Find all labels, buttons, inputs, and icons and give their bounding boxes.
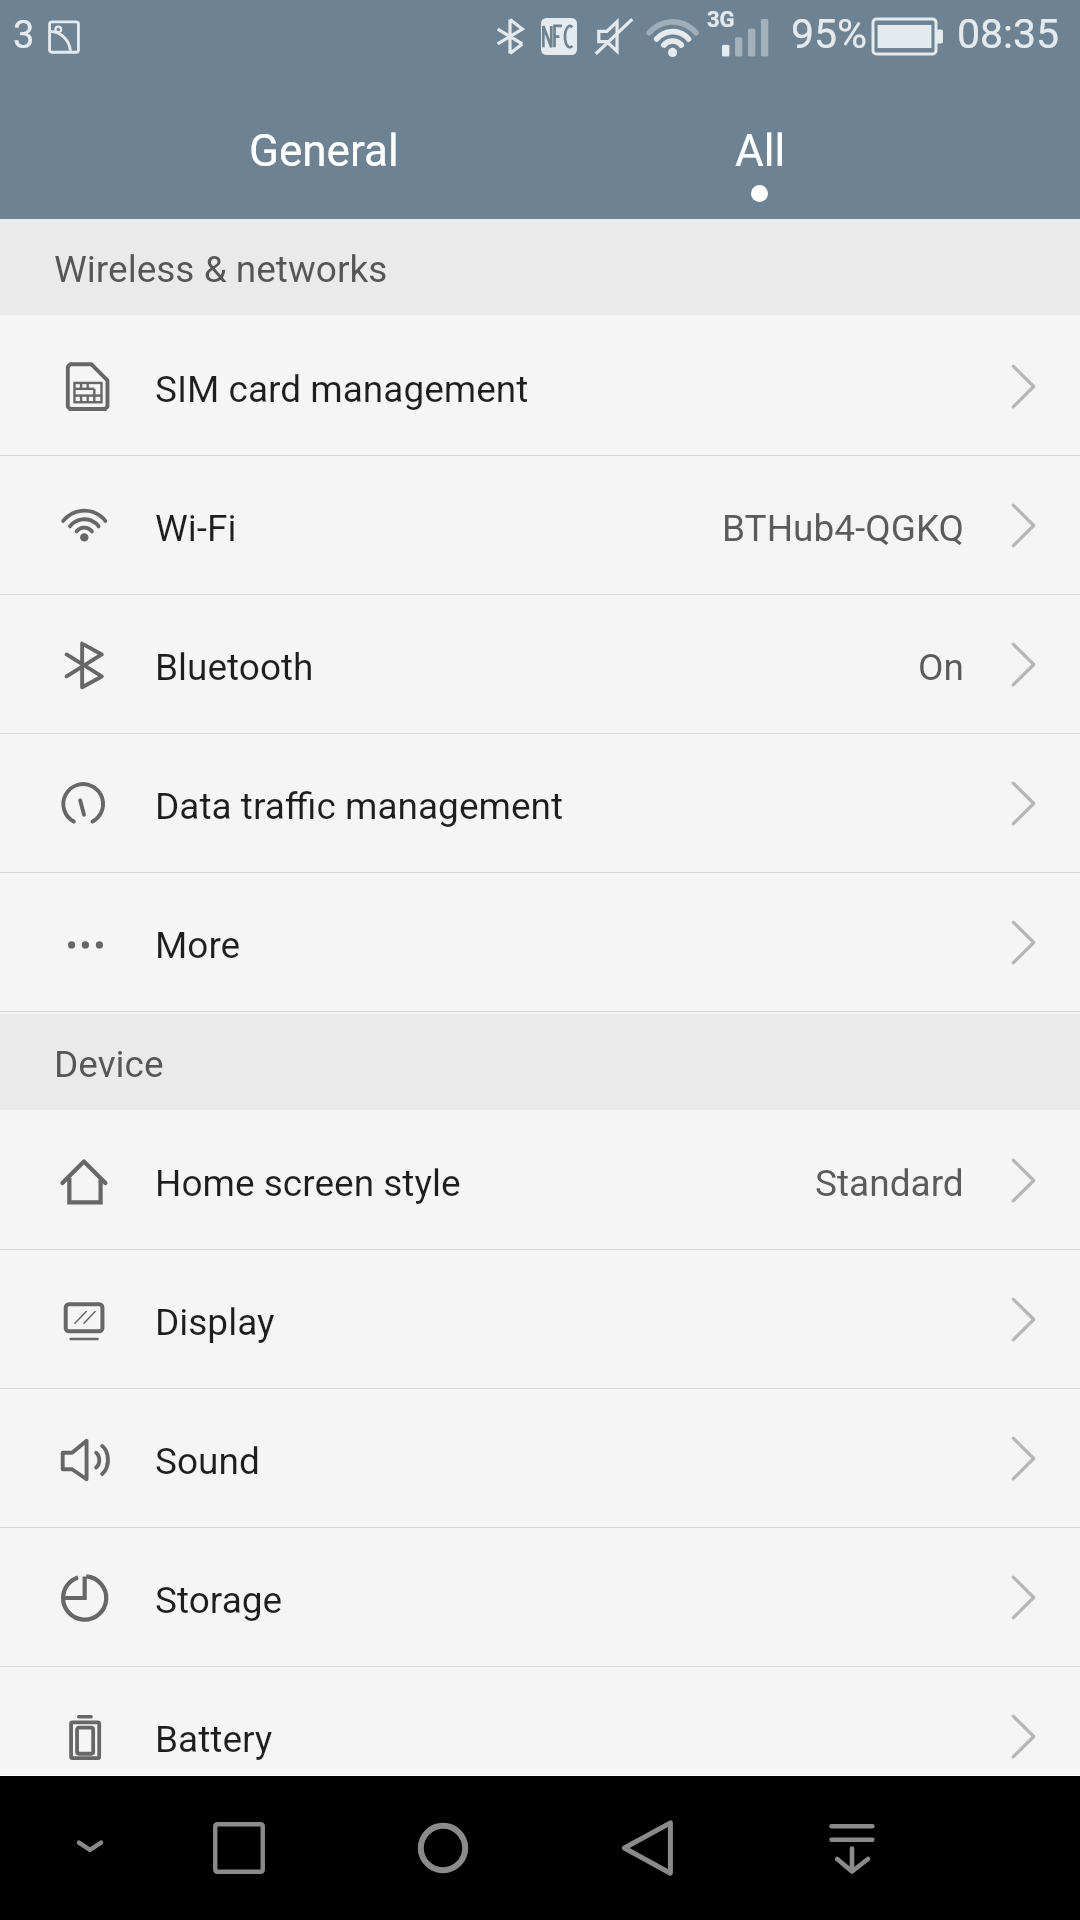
button[interactable]: Home: [373, 1776, 513, 1920]
button[interactable]: Recent apps: [169, 1776, 309, 1920]
button[interactable]: Home screen style: [0, 1111, 1080, 1250]
staticText: Wireless & networks: [54, 248, 388, 291]
staticText: 95%: [791, 10, 868, 58]
button[interactable]: Notification shade: [782, 1776, 922, 1920]
button[interactable]: Collapse: [20, 1776, 160, 1920]
staticText: Data traffic management: [155, 785, 564, 828]
button[interactable]: Wi-Fi: [0, 456, 1080, 595]
staticText: SIM card management: [155, 368, 529, 411]
staticText: 3G: [707, 7, 735, 33]
staticText: Display: [155, 1301, 275, 1344]
button[interactable]: Display: [0, 1250, 1080, 1389]
button[interactable]: More: [0, 873, 1080, 1012]
button[interactable]: General: [0, 72, 540, 219]
staticText: All: [735, 125, 786, 177]
button[interactable]: Data traffic management: [0, 734, 1080, 873]
staticText: Battery: [155, 1718, 273, 1761]
button[interactable]: Storage: [0, 1528, 1080, 1667]
staticText: 08:35: [957, 10, 1060, 58]
staticText: Standard: [815, 1162, 964, 1205]
staticText: Storage: [155, 1579, 283, 1622]
staticText: Sound: [155, 1440, 260, 1483]
staticText: More: [155, 924, 241, 967]
button[interactable]: Back: [578, 1776, 718, 1920]
staticText: On: [918, 646, 964, 689]
staticText: General: [249, 125, 399, 177]
button[interactable]: SIM card management: [0, 317, 1080, 456]
staticText: Bluetooth: [155, 646, 314, 689]
staticText: BTHub4-QGKQ: [722, 507, 964, 550]
button[interactable]: Sound: [0, 1389, 1080, 1528]
staticText: Wi-Fi: [155, 507, 237, 550]
button[interactable]: All: [540, 72, 1080, 219]
staticText: 3: [13, 13, 35, 58]
staticText: Home screen style: [155, 1162, 461, 1205]
button[interactable]: Bluetooth: [0, 595, 1080, 734]
button[interactable]: Battery: [0, 1667, 1080, 1776]
staticText: Device: [54, 1043, 164, 1086]
